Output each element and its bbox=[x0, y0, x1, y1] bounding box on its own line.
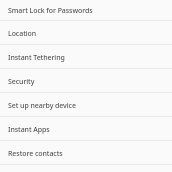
button[interactable]: Smart Lock for Passwords bbox=[0, 0, 172, 20]
button[interactable]: Instant Apps bbox=[0, 117, 172, 140]
staticText: Location bbox=[8, 29, 37, 39]
staticText: Instant Apps bbox=[8, 125, 50, 135]
button[interactable]: Set up nearby device bbox=[0, 93, 172, 116]
button[interactable]: Restore contacts bbox=[0, 141, 172, 164]
staticText: Security bbox=[8, 77, 35, 87]
staticText: Instant Tethering bbox=[8, 53, 65, 63]
staticText: Set up nearby device bbox=[8, 101, 76, 111]
button[interactable]: Instant Tethering bbox=[0, 45, 172, 68]
staticText: Smart Lock for Passwords bbox=[8, 6, 93, 16]
button[interactable]: Location bbox=[0, 21, 172, 44]
button[interactable]: Security bbox=[0, 69, 172, 92]
staticText: Restore contacts bbox=[8, 149, 63, 159]
